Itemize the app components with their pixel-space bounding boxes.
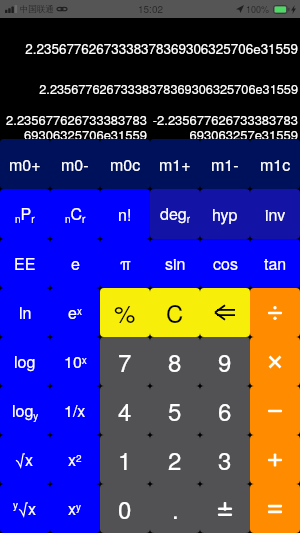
staticText: 10x <box>64 350 87 373</box>
button[interactable]: Multiply <box>250 337 300 386</box>
button[interactable]: degr <box>150 189 200 239</box>
button[interactable]: Subtract <box>250 386 300 435</box>
staticText: n! <box>118 203 132 226</box>
staticText: e <box>71 252 80 275</box>
staticText: 2.23567762673338378369306325706e31559 <box>0 79 298 97</box>
button[interactable]: 10x <box>50 337 100 386</box>
staticText: x <box>28 497 37 520</box>
button[interactable]: 1 <box>100 435 150 484</box>
staticText: EE <box>14 252 36 275</box>
button[interactable]: EE <box>0 239 50 288</box>
button[interactable]: ex <box>50 288 100 337</box>
button[interactable]: 6 <box>200 386 250 435</box>
button[interactable]: inv <box>250 189 300 239</box>
button[interactable]: m1+ <box>150 139 200 189</box>
button[interactable]: π <box>100 239 150 288</box>
staticText: nPr <box>15 202 35 226</box>
button[interactable]: 3 <box>200 435 250 484</box>
staticText: inv <box>265 203 286 226</box>
staticText: degr <box>160 202 191 226</box>
staticText: m0c <box>110 153 141 176</box>
staticText: 7 <box>118 344 132 378</box>
staticText: π <box>120 252 131 275</box>
button[interactable]: nCr <box>50 189 100 239</box>
button[interactable]: Equals <box>250 484 300 533</box>
button[interactable]: nPr <box>0 189 50 239</box>
staticText: ln <box>19 301 32 324</box>
button[interactable]: hyp <box>200 189 250 239</box>
staticText: 3 <box>218 442 232 476</box>
staticText: 2.235677626733383783 69306325706e31559 <box>0 110 147 139</box>
staticText: 4 <box>118 393 132 427</box>
staticText: 9 <box>218 344 232 378</box>
staticText: % <box>114 295 136 329</box>
staticText: . <box>172 491 179 525</box>
staticText: m0+ <box>9 153 41 176</box>
staticText: y <box>13 498 18 512</box>
staticText: 6 <box>218 393 232 427</box>
button[interactable]: x2 <box>50 435 100 484</box>
staticText: 8 <box>168 344 182 378</box>
button[interactable]: xy <box>50 484 100 533</box>
button[interactable]: m1- <box>200 139 250 189</box>
staticText: tan <box>264 252 287 275</box>
staticText: xy <box>68 497 82 520</box>
button[interactable]: e <box>50 239 100 288</box>
staticText: log <box>14 350 36 373</box>
staticText: m1- <box>211 153 239 176</box>
staticText: 1 <box>118 442 132 476</box>
staticText: hyp <box>212 203 238 226</box>
button[interactable]: n! <box>100 189 150 239</box>
staticText: cos <box>213 252 238 275</box>
button[interactable]: Add <box>250 435 300 484</box>
staticText: C <box>166 295 184 329</box>
staticText: m1+ <box>159 153 191 176</box>
button[interactable]: % <box>100 288 150 337</box>
staticText: -2.235677626733383783 693063257e31559 <box>0 110 298 139</box>
staticText: x <box>25 448 34 471</box>
button[interactable]: 8 <box>150 337 200 386</box>
button[interactable]: Backspace <box>200 288 250 337</box>
button[interactable]: tan <box>250 239 300 288</box>
staticText: m1c <box>260 153 291 176</box>
staticText: ex <box>68 301 82 324</box>
button[interactable]: 2 <box>150 435 200 484</box>
button[interactable]: . <box>150 484 200 533</box>
staticText: 0 <box>118 491 132 525</box>
button[interactable]: log <box>0 337 50 386</box>
button[interactable]: m0c <box>100 139 150 189</box>
button[interactable]: logy <box>0 386 50 435</box>
button[interactable]: cos <box>200 239 250 288</box>
button[interactable]: 9 <box>200 337 250 386</box>
staticText: 15:02 <box>138 2 164 16</box>
button[interactable]: 0 <box>100 484 150 533</box>
button[interactable]: x <box>0 435 50 484</box>
button[interactable]: sin <box>150 239 200 288</box>
button[interactable]: Divide <box>250 288 300 337</box>
staticText: logy <box>12 399 39 423</box>
staticText: 1/x <box>64 399 86 422</box>
staticText: nCr <box>65 202 86 226</box>
button[interactable]: 5 <box>150 386 200 435</box>
staticText: m0- <box>61 153 89 176</box>
button[interactable]: m1c <box>250 139 300 189</box>
staticText: sin <box>165 252 186 275</box>
staticText: 2.23567762673338378369306325706e31559 <box>0 39 298 58</box>
button[interactable]: ln <box>0 288 50 337</box>
button[interactable]: Plus minus <box>200 484 250 533</box>
staticText: 2 <box>168 442 182 476</box>
button[interactable]: 1/x <box>50 386 100 435</box>
button[interactable]: 7 <box>100 337 150 386</box>
button[interactable]: m0- <box>50 139 100 189</box>
button[interactable]: m0+ <box>0 139 50 189</box>
staticText: 5 <box>168 393 182 427</box>
button[interactable]: 4 <box>100 386 150 435</box>
staticText: 中国联通 <box>20 4 54 15</box>
button[interactable]: y <box>0 484 50 533</box>
button[interactable]: C <box>150 288 200 337</box>
staticText: 100% <box>246 3 270 16</box>
staticText: x2 <box>68 448 82 471</box>
